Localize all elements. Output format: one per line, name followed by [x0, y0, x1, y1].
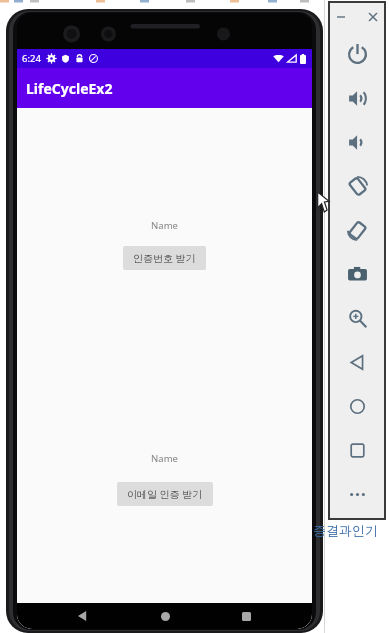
button[interactable]: Rotate right	[329, 208, 385, 252]
staticText: 이메일 인증 받기	[127, 487, 203, 501]
button[interactable]: Minimize	[332, 8, 350, 26]
button[interactable]: Overview	[329, 428, 385, 472]
staticText: 증결과인기	[313, 522, 378, 538]
button[interactable]: 이메일 인증 받기	[117, 482, 213, 506]
button[interactable]: Volume up	[329, 76, 385, 120]
button[interactable]: Home	[150, 603, 180, 629]
button[interactable]: Zoom	[329, 296, 385, 340]
button[interactable]: Back	[68, 603, 98, 629]
button[interactable]: 인증번호 받기	[123, 246, 206, 270]
button[interactable]: Take screenshot	[329, 252, 385, 296]
staticText: Name	[151, 452, 178, 465]
button[interactable]: More	[329, 472, 385, 516]
staticText: Name	[151, 219, 178, 232]
staticText: 인증번호 받기	[133, 251, 196, 265]
button[interactable]: Recent apps	[231, 603, 261, 629]
button[interactable]: Power	[329, 32, 385, 76]
button[interactable]: Close	[364, 8, 382, 26]
staticText: LifeCycleEx2	[26, 79, 113, 98]
staticText: 6:24	[22, 52, 41, 65]
button[interactable]: Rotate left	[329, 164, 385, 208]
button[interactable]: Home	[329, 384, 385, 428]
button[interactable]: Back	[329, 340, 385, 384]
button[interactable]: Volume down	[329, 120, 385, 164]
